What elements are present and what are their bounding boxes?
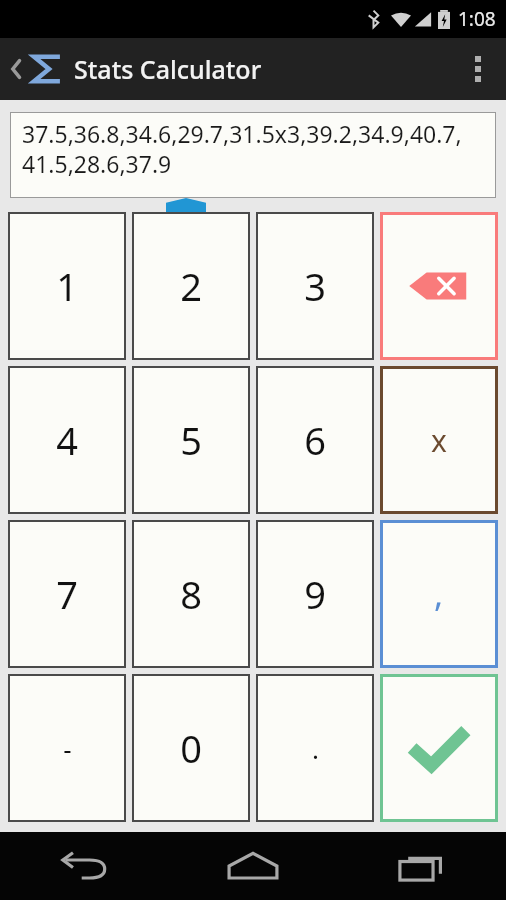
button[interactable]: 3: [256, 212, 374, 360]
staticText: 1:08: [458, 6, 496, 32]
staticText: 3: [304, 260, 326, 312]
button[interactable]: 0: [132, 674, 250, 822]
button[interactable]: 7: [8, 520, 126, 668]
staticText: 2: [180, 260, 202, 312]
staticText: .: [312, 731, 319, 766]
staticText: 6: [304, 414, 326, 466]
button[interactable]: 9: [256, 520, 374, 668]
button[interactable]: 2: [132, 212, 250, 360]
button[interactable]: 37.5,36.8,34.6,29.7,31.5x3,39.2,34.9,40.…: [10, 112, 496, 198]
staticText: 0: [180, 722, 202, 774]
staticText: 7: [56, 568, 78, 620]
button[interactable]: Comma: [380, 520, 498, 668]
staticText: x: [431, 420, 447, 461]
staticText: Stats Calculator: [74, 52, 262, 86]
staticText: 9: [304, 568, 326, 620]
button[interactable]: -: [8, 674, 126, 822]
button[interactable]: Backspace: [380, 212, 498, 360]
button[interactable]: 8: [132, 520, 250, 668]
staticText: 37.5,36.8,34.6,29.7,31.5x3,39.2,34.9,40.…: [22, 118, 462, 180]
staticText: 4: [56, 414, 78, 466]
staticText: 1: [56, 260, 78, 312]
button[interactable]: Back: [8, 52, 262, 86]
button[interactable]: Home: [168, 832, 337, 900]
button[interactable]: More options: [450, 38, 506, 100]
button[interactable]: .: [256, 674, 374, 822]
staticText: -: [63, 731, 72, 766]
button[interactable]: 6: [256, 366, 374, 514]
button[interactable]: Done: [380, 674, 498, 822]
button[interactable]: 1: [8, 212, 126, 360]
button[interactable]: Back: [0, 832, 168, 900]
button[interactable]: 5: [132, 366, 250, 514]
button[interactable]: Multiply: [380, 366, 498, 514]
staticText: 8: [180, 568, 202, 620]
staticText: ,: [434, 571, 444, 617]
button[interactable]: 4: [8, 366, 126, 514]
button[interactable]: Recent apps: [337, 832, 506, 900]
staticText: 5: [180, 414, 202, 466]
